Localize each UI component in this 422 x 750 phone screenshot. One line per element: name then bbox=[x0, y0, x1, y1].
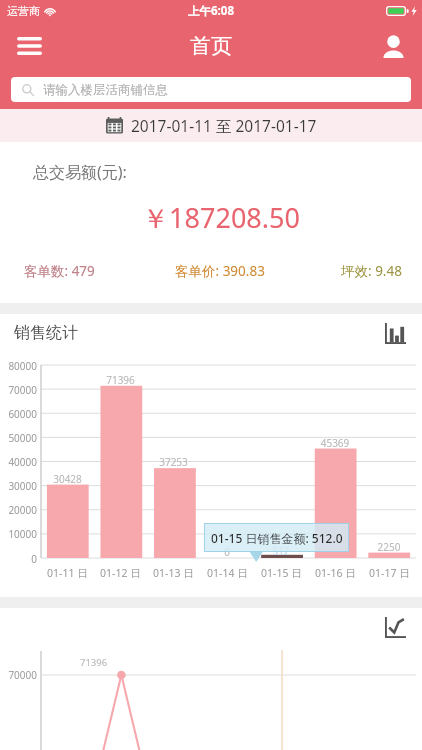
staticText: 30000 bbox=[0, 479, 37, 493]
staticText: 71396 bbox=[80, 656, 108, 669]
staticText: 70000 bbox=[0, 383, 37, 397]
staticText: 01-17 日 bbox=[369, 566, 410, 580]
staticText: 60000 bbox=[0, 407, 37, 421]
staticText: 80000 bbox=[0, 359, 37, 373]
button[interactable]: Profile bbox=[370, 23, 416, 69]
staticText: 销售统计 bbox=[14, 323, 78, 343]
button[interactable]: Line chart view bbox=[380, 612, 410, 642]
staticText: 坪效: 9.48 bbox=[341, 262, 402, 280]
staticText: 运营商 bbox=[7, 4, 40, 18]
staticText: 01-11 日 bbox=[47, 566, 88, 580]
staticText: 客单价: 390.83 bbox=[175, 262, 265, 280]
staticText: ￥187208.50 bbox=[20, 199, 422, 236]
staticText: 总交易额(元): bbox=[33, 161, 127, 183]
staticText: 71396 bbox=[94, 373, 147, 387]
button[interactable]: Menu bbox=[6, 23, 52, 69]
staticText: 50000 bbox=[0, 431, 37, 445]
staticText: 512 bbox=[254, 544, 308, 558]
button[interactable]: 请输入楼层活商铺信息 bbox=[11, 77, 411, 102]
staticText: 01-14 日 bbox=[207, 566, 248, 580]
staticText: 0 bbox=[200, 545, 254, 559]
staticText: 首页 bbox=[190, 33, 232, 59]
staticText: 01-12 日 bbox=[100, 566, 141, 580]
staticText: 01-15 日销售金额: 512.0 bbox=[211, 530, 343, 546]
staticText: 40000 bbox=[0, 455, 37, 469]
staticText: 30428 bbox=[41, 472, 94, 486]
staticText: 0 bbox=[0, 552, 37, 566]
staticText: 2017-01-11 至 2017-01-17 bbox=[131, 115, 317, 136]
staticText: 上午6:08 bbox=[188, 3, 234, 19]
staticText: 01-15 日 bbox=[261, 566, 302, 580]
staticText: 37253 bbox=[147, 455, 200, 469]
staticText: 请输入楼层活商铺信息 bbox=[43, 82, 168, 98]
button[interactable]: Bar chart view bbox=[380, 318, 410, 348]
staticText: 20000 bbox=[0, 503, 37, 517]
button[interactable]: 2017-01-11 至 2017-01-17 bbox=[0, 109, 422, 142]
staticText: 01-13 日 bbox=[153, 566, 194, 580]
staticText: 45369 bbox=[308, 436, 362, 450]
staticText: 客单数: 479 bbox=[24, 262, 95, 280]
staticText: 2250 bbox=[362, 540, 416, 554]
staticText: 70000 bbox=[0, 668, 37, 682]
staticText: 10000 bbox=[0, 527, 37, 541]
staticText: 01-16 日 bbox=[315, 566, 356, 580]
